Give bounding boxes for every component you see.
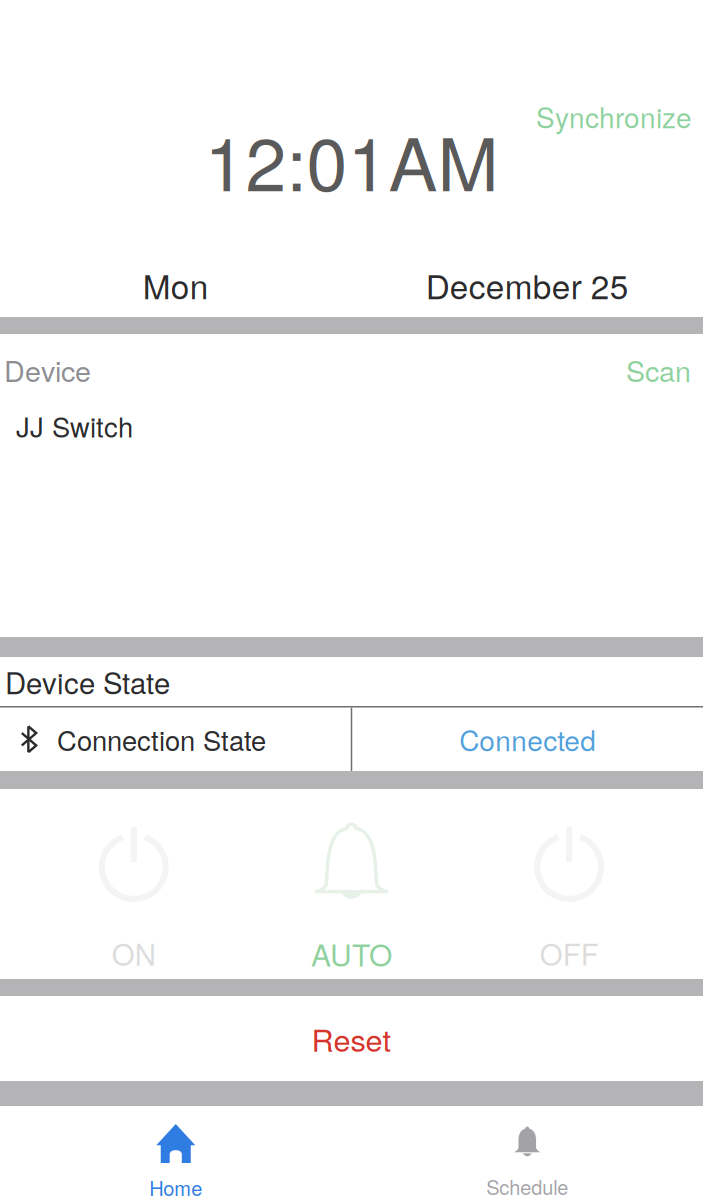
button[interactable]: OFF [460,821,678,979]
staticText: Schedule [486,1172,568,1200]
button[interactable]: Reset [0,990,703,1086]
button[interactable]: Home [0,1124,351,1200]
staticText: Mon [143,261,209,309]
button[interactable]: Schedule [351,1124,703,1200]
button[interactable]: JJ Switch [0,406,703,445]
staticText: AUTO [311,932,392,975]
staticText: Synchronize [536,96,692,136]
staticText: Device State [5,660,170,702]
staticText: ON [112,932,156,974]
staticText: Home [149,1173,202,1200]
staticText: Connection State [57,720,266,759]
button[interactable]: ON [25,821,243,979]
button[interactable]: Synchronize [536,96,703,136]
staticText: 12:01AM [204,107,498,212]
staticText: December 25 [426,261,629,309]
staticText: Scan [626,349,691,390]
staticText: OFF [540,932,599,974]
staticText: Device [4,349,91,390]
staticText: Reset [311,1016,391,1060]
staticText: Connected [459,719,596,759]
button[interactable]: Scan [626,349,691,390]
staticText: JJ Switch [16,406,133,445]
button[interactable]: AUTO [243,821,460,979]
